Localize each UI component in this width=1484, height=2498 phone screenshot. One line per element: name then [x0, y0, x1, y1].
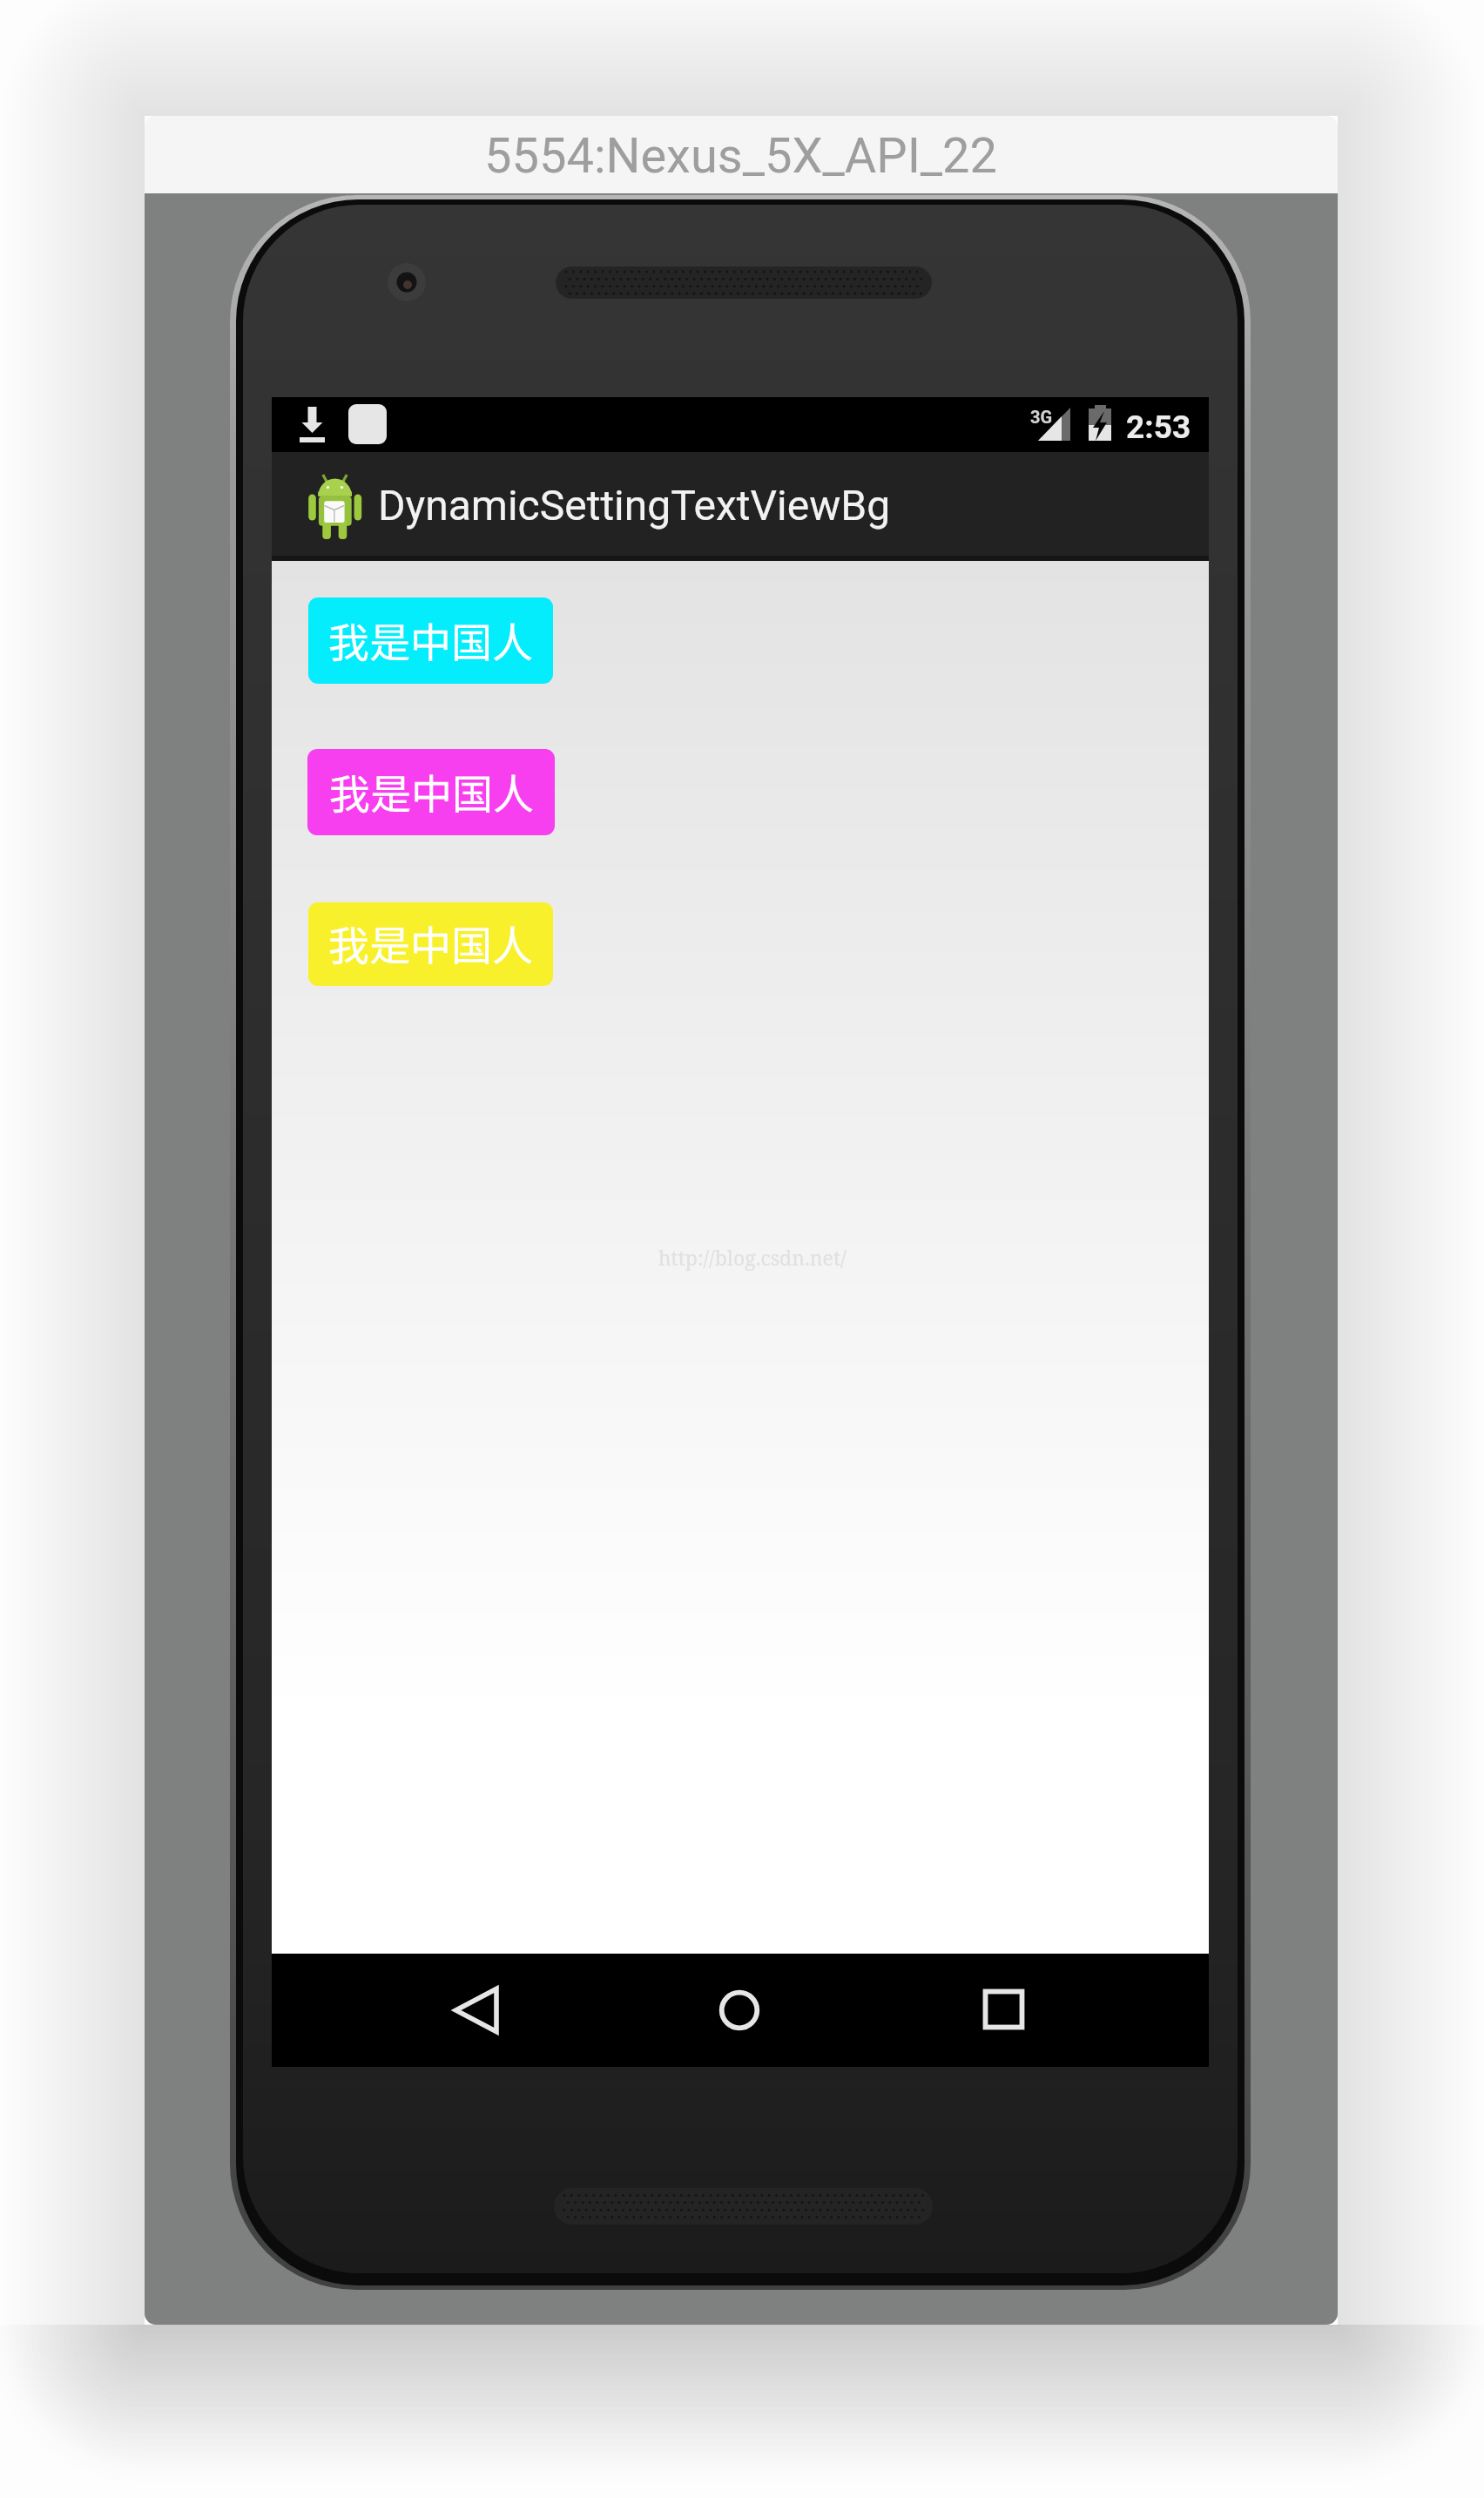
button[interactable]: 我是中国人: [307, 749, 555, 835]
staticText: 5554:Nexus_5X_API_22: [484, 127, 998, 185]
staticText: 我是中国人: [328, 610, 533, 669]
staticText: 我是中国人: [329, 761, 534, 820]
button[interactable]: Recent apps: [934, 1954, 1074, 2067]
staticText: 我是中国人: [328, 913, 533, 972]
button[interactable]: 我是中国人: [308, 597, 553, 684]
button[interactable]: Home: [669, 1954, 810, 2067]
button[interactable]: Back: [406, 1954, 546, 2067]
button[interactable]: DynamicSettingTextViewBg: [272, 452, 1209, 561]
staticText: 3G: [1030, 407, 1053, 427]
staticText: http://blog.csdn.net/: [658, 1244, 847, 1271]
button[interactable]: 我是中国人: [308, 902, 553, 986]
staticText: 2:53: [1126, 408, 1191, 446]
staticText: DynamicSettingTextViewBg: [378, 481, 891, 530]
